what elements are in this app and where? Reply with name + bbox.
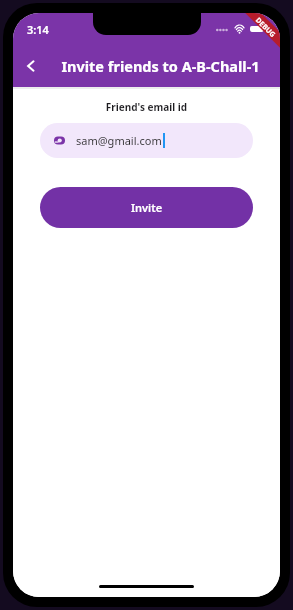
staticText: Invite friends to A-B-Chall-1 [61,56,260,76]
staticText: 3:14 [27,22,49,37]
staticText: Invite [131,200,163,215]
staticText: Friend's email id [13,100,280,114]
staticText: DEBUG [253,16,278,40]
button[interactable]: Invite [40,187,253,228]
button[interactable]: sam@gmail.com [40,123,253,158]
button[interactable]: Back [13,45,49,87]
staticText: sam@gmail.com [76,133,162,148]
